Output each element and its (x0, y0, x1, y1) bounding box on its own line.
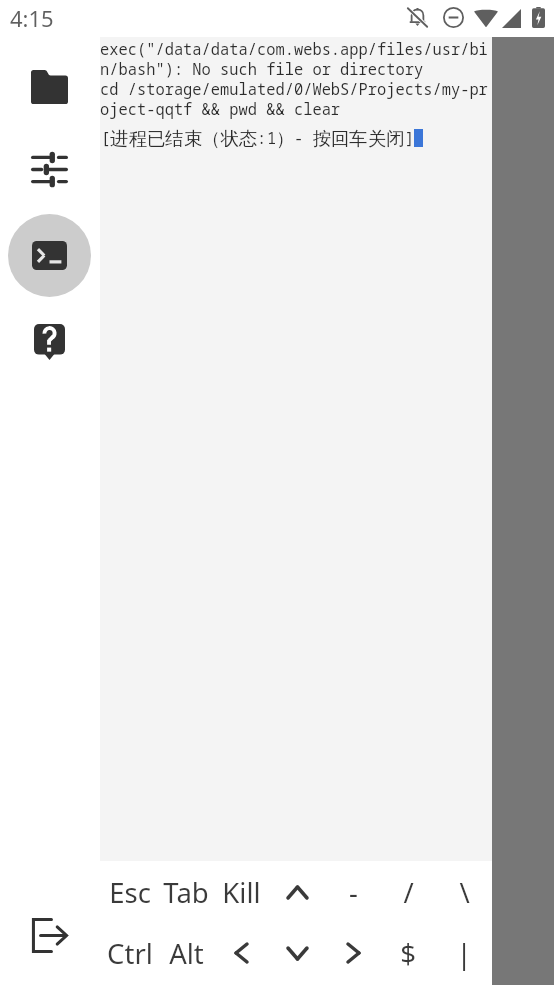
button[interactable]: | (436, 925, 492, 981)
staticText: ] (405, 128, 415, 149)
staticText: Esc (109, 874, 151, 911)
staticText: 已 (147, 127, 166, 150)
button[interactable]: Esc (102, 864, 158, 920)
button[interactable]: Tab (158, 864, 214, 920)
staticText: 车 (349, 127, 368, 150)
staticText: 4:15 (10, 3, 54, 33)
staticText: 关 (368, 127, 387, 150)
staticText: Tab (163, 874, 209, 911)
button[interactable]: \ (436, 864, 492, 920)
staticText: 态 (239, 127, 258, 150)
staticText: n/bash"): No such file or directory (100, 59, 424, 80)
staticText: 程 (129, 127, 148, 150)
staticText: exec("/data/data/com.webs.app/files/usr/… (100, 39, 488, 60)
button[interactable]: Right (325, 925, 381, 981)
staticText: Ctrl (107, 935, 153, 972)
button[interactable]: Settings (8, 128, 91, 211)
staticText: 束 (184, 127, 203, 150)
button[interactable]: - (325, 864, 381, 920)
staticText: 状 (221, 127, 240, 150)
staticText: [ (101, 128, 111, 149)
button[interactable]: Exit (8, 894, 91, 977)
staticText: $ (400, 935, 416, 972)
button[interactable]: Left (213, 925, 269, 981)
staticText: ） (276, 127, 295, 150)
staticText: - (349, 874, 358, 911)
staticText: oject-qqtf && pwd && clear (100, 99, 341, 120)
staticText: 闭 (386, 127, 405, 150)
staticText: 1 (267, 128, 277, 149)
staticText: \ (459, 874, 470, 911)
button[interactable]: Up (269, 864, 325, 920)
button[interactable]: Terminal (8, 214, 91, 297)
button[interactable]: Ctrl (102, 925, 158, 981)
staticText: 回 (331, 127, 350, 150)
staticText: : (257, 128, 267, 149)
staticText: Alt (169, 935, 204, 972)
button[interactable]: $ (380, 925, 436, 981)
staticText: （ (202, 127, 221, 150)
button[interactable]: Help (8, 300, 91, 383)
staticText: / (403, 874, 414, 911)
staticText: cd /storage/emulated/0/WebS/Projects/my-… (100, 79, 488, 100)
button[interactable]: Kill (213, 864, 269, 920)
staticText: 结 (165, 127, 184, 150)
staticText: 进 (110, 127, 129, 150)
staticText: Kill (222, 874, 261, 911)
button[interactable]: / (380, 864, 436, 920)
button[interactable]: Files (8, 45, 91, 128)
button[interactable]: Alt (158, 925, 214, 981)
button[interactable]: Down (269, 925, 325, 981)
staticText: 按 (313, 127, 332, 150)
staticText: - (294, 128, 304, 149)
staticText: | (456, 935, 472, 972)
